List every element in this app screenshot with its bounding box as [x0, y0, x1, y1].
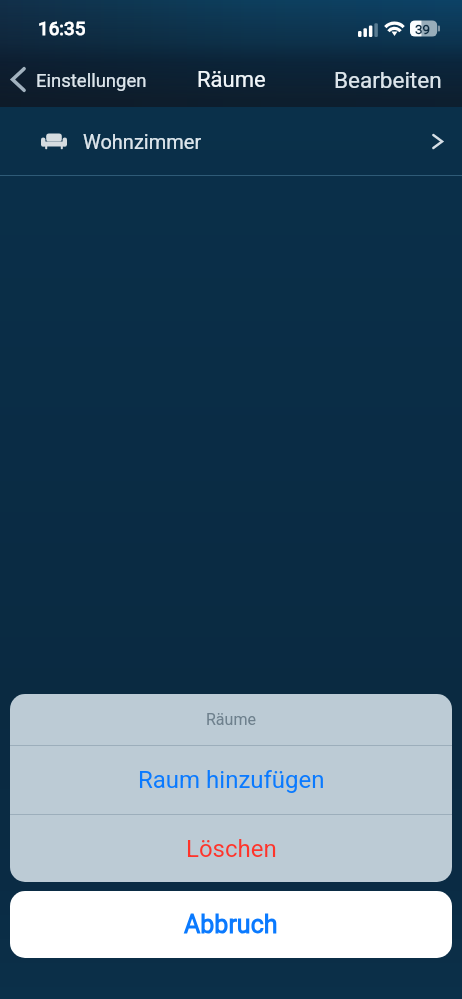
staticText: Bearbeiten — [334, 67, 442, 93]
button[interactable]: Wohnzimmer — [0, 107, 462, 175]
staticText: 39 — [415, 21, 431, 37]
button[interactable]: Bearbeiten — [324, 67, 462, 93]
button[interactable]: Löschen — [10, 815, 452, 882]
button[interactable]: Einstellungen — [0, 67, 155, 92]
staticText: Einstellungen — [36, 70, 147, 92]
staticText: Räume — [206, 710, 256, 729]
staticText: Abbruch — [184, 910, 278, 939]
staticText: Wohnzimmer — [83, 130, 202, 153]
staticText: Raum hinzufügen — [138, 766, 325, 794]
staticText: Räume — [197, 67, 266, 93]
staticText: 16:35 — [38, 17, 86, 39]
staticText: Löschen — [186, 835, 277, 863]
button[interactable]: Raum hinzufügen — [10, 746, 452, 814]
button[interactable]: Abbruch — [10, 891, 452, 958]
other: Open Wohnzimmer — [432, 135, 443, 148]
